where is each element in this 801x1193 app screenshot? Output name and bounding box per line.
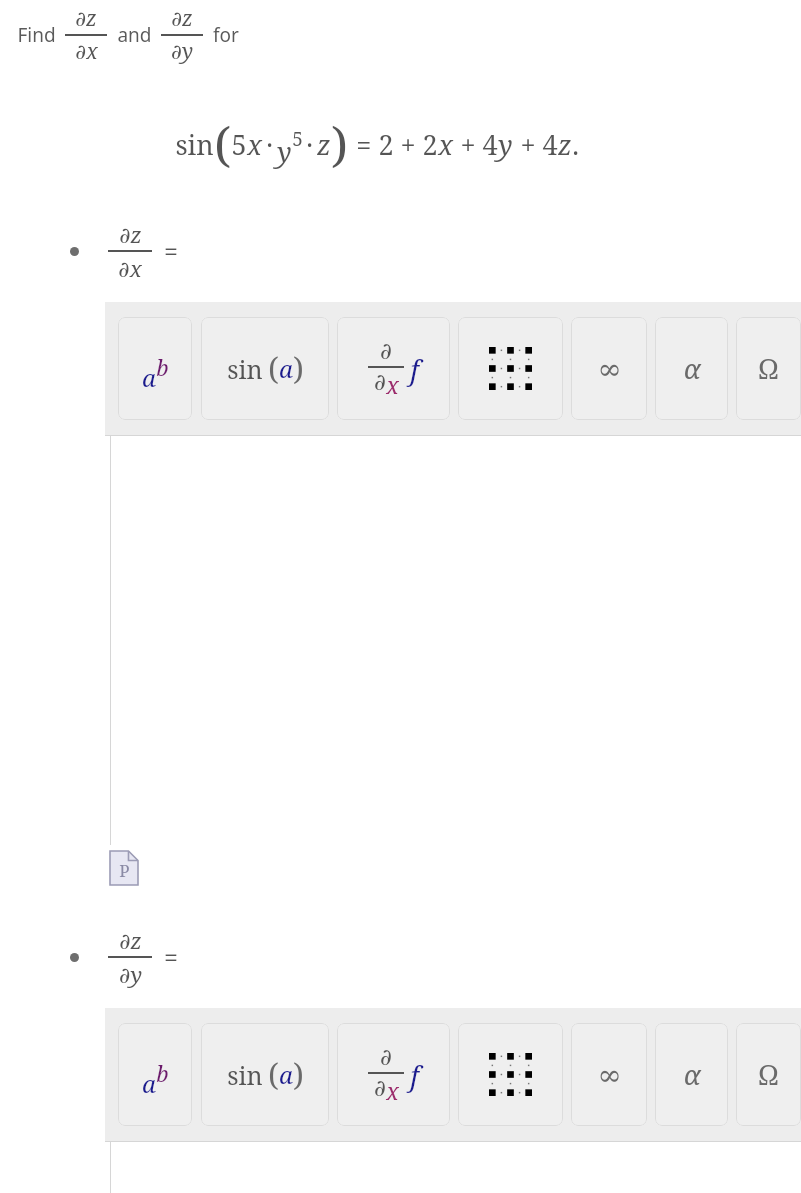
- staticText: z: [317, 126, 331, 163]
- staticText: Ω: [758, 1056, 779, 1093]
- staticText: + 4: [513, 126, 558, 163]
- staticText: ∂y: [171, 37, 193, 66]
- staticText: z: [558, 126, 572, 163]
- staticText: =: [164, 234, 178, 268]
- staticText: for: [213, 22, 239, 48]
- staticText: ∂: [380, 338, 392, 365]
- button[interactable]: Alpha: [655, 1023, 728, 1126]
- staticText: + 4: [453, 126, 498, 163]
- staticText: P: [119, 859, 130, 882]
- staticText: ∂: [374, 369, 386, 396]
- staticText: (: [214, 111, 231, 176]
- button[interactable]: Preview: [110, 851, 138, 885]
- staticText: ): [293, 1054, 304, 1095]
- button[interactable]: Exponent a to the b: [118, 1023, 192, 1126]
- staticText: b: [156, 352, 169, 382]
- staticText: f: [410, 1057, 419, 1094]
- button[interactable]: Partial derivative: [337, 317, 450, 420]
- button[interactable]: Infinity: [571, 317, 647, 420]
- button[interactable]: Sine function: [201, 1023, 329, 1126]
- staticText: α: [683, 1056, 701, 1093]
- staticText: ·: [306, 126, 313, 163]
- staticText: ∂z: [119, 925, 142, 955]
- staticText: ∂x: [75, 37, 98, 66]
- button[interactable]: Alpha: [655, 317, 728, 420]
- staticText: ∂z: [119, 219, 142, 249]
- staticText: x: [386, 369, 399, 400]
- staticText: ): [293, 348, 304, 389]
- staticText: x: [247, 126, 262, 163]
- button[interactable]: Matrix: [458, 1023, 563, 1126]
- staticText: a: [142, 361, 156, 394]
- staticText: a: [142, 1067, 156, 1100]
- button[interactable]: Greek letters: [736, 1023, 801, 1126]
- button[interactable]: Exponent a to the b: [118, 317, 192, 420]
- button[interactable]: Greek letters: [736, 317, 801, 420]
- staticText: b: [156, 1058, 169, 1088]
- button[interactable]: Partial derivative: [337, 1023, 450, 1126]
- staticText: Find: [17, 22, 56, 48]
- staticText: ∞: [597, 352, 622, 386]
- staticText: ∂z: [171, 4, 193, 33]
- staticText: a: [279, 352, 293, 385]
- staticText: and: [117, 22, 152, 48]
- staticText: sin: [175, 126, 214, 163]
- staticText: = 2 + 2: [356, 126, 438, 163]
- staticText: y: [498, 126, 513, 163]
- staticText: (: [268, 348, 279, 389]
- button[interactable]: Matrix: [458, 317, 563, 420]
- staticText: ∂y: [119, 959, 142, 989]
- staticText: Ω: [758, 350, 779, 387]
- staticText: 5: [231, 126, 247, 163]
- staticText: (: [268, 1054, 279, 1095]
- staticText: y: [277, 133, 292, 170]
- staticText: f: [410, 351, 419, 388]
- staticText: sin: [227, 352, 263, 386]
- staticText: x: [438, 126, 453, 163]
- staticText: ∂: [374, 1075, 386, 1102]
- staticText: =: [164, 940, 178, 974]
- staticText: ·: [266, 126, 273, 163]
- staticText: α: [683, 350, 701, 387]
- staticText: ): [331, 111, 348, 176]
- button[interactable]: Infinity: [571, 1023, 647, 1126]
- staticText: a: [279, 1058, 293, 1091]
- staticText: ∂x: [118, 253, 142, 283]
- staticText: sin: [227, 1058, 263, 1092]
- staticText: 5: [292, 126, 303, 152]
- staticText: ∂: [380, 1044, 392, 1071]
- staticText: .: [572, 126, 579, 163]
- staticText: ∞: [597, 1058, 622, 1092]
- staticText: ∂z: [75, 4, 97, 33]
- staticText: x: [386, 1075, 399, 1106]
- button[interactable]: Sine function: [201, 317, 329, 420]
